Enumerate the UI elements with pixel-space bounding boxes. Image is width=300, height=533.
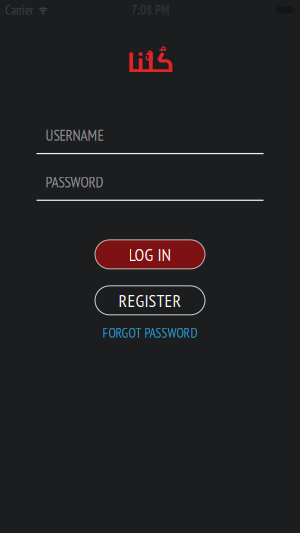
button[interactable]: FORGOT PASSWORD bbox=[98, 320, 201, 345]
button[interactable]: USERNAME bbox=[36, 125, 263, 154]
button[interactable]: PASSWORD bbox=[36, 172, 263, 201]
staticText: REGISTER bbox=[118, 289, 181, 312]
staticText: FORGOT PASSWORD bbox=[102, 324, 197, 341]
staticText: كُلُّنا bbox=[126, 36, 174, 88]
staticText: 7:08 PM bbox=[131, 2, 169, 18]
staticText: PASSWORD bbox=[45, 172, 103, 192]
button[interactable]: REGISTER bbox=[95, 286, 205, 315]
staticText: LOG IN bbox=[128, 243, 171, 266]
staticText: USERNAME bbox=[45, 125, 103, 145]
staticText: Carrier bbox=[5, 2, 33, 18]
button[interactable]: LOG IN bbox=[95, 240, 205, 269]
